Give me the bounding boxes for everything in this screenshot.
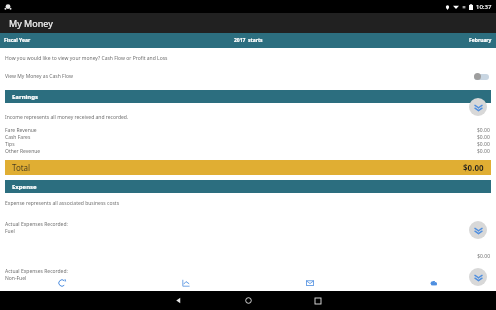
button[interactable]: Total: [5, 160, 491, 175]
staticText: View My Money as Cash Flow: [5, 73, 474, 80]
button[interactable]: View My Money as Cash Flow: [0, 70, 496, 82]
button[interactable]: Refresh: [0, 275, 124, 291]
staticText: Non-Fuel: [5, 275, 27, 282]
button[interactable]: Expand Fuel expenses: [469, 221, 487, 239]
button[interactable]: Email: [248, 275, 372, 291]
staticText: Other Revenue: [5, 148, 477, 155]
staticText: How you would like to view your money? C…: [5, 55, 168, 62]
button[interactable]: Fare Revenue: [0, 127, 496, 134]
button[interactable]: Expense: [5, 180, 491, 193]
staticText: $0.00: [0, 253, 490, 260]
staticText: Earnings: [12, 93, 39, 101]
staticText: Total: [12, 162, 31, 173]
staticText: Actual Expenses Recorded:: [5, 221, 68, 228]
button[interactable]: Home: [213, 291, 283, 310]
staticText: Fare Revenue: [5, 127, 477, 134]
staticText: Expense represents all associated busine…: [5, 200, 120, 207]
button[interactable]: Expand Earnings: [469, 98, 487, 116]
button[interactable]: Chart: [124, 275, 248, 291]
staticText: Tips: [5, 141, 477, 148]
staticText: Fuel: [5, 228, 15, 235]
button[interactable]: Fiscal Year: [0, 33, 496, 48]
staticText: $0.00: [477, 134, 490, 141]
button[interactable]: Back: [143, 291, 213, 310]
button[interactable]: Expand Non-Fuel expenses: [469, 268, 487, 286]
staticText: $0.00: [477, 127, 490, 134]
staticText: Fiscal Year: [4, 37, 31, 44]
button[interactable]: Upload to cloud: [372, 275, 496, 291]
button[interactable]: Tips: [0, 141, 496, 148]
button[interactable]: Other Revenue: [0, 148, 496, 155]
staticText: $0.00: [477, 148, 490, 155]
staticText: $0.00: [463, 162, 484, 173]
staticText: Actual Expenses Recorded:: [5, 268, 68, 275]
staticText: My Money: [9, 17, 53, 29]
staticText: February: [469, 37, 492, 44]
staticText: Expense: [12, 183, 37, 191]
staticText: Income represents all money received and…: [5, 114, 129, 121]
staticText: $0.00: [477, 141, 490, 148]
button[interactable]: Earnings: [5, 90, 491, 103]
button[interactable]: Cash Fares: [0, 134, 496, 141]
staticText: Cash Fares: [5, 134, 477, 141]
staticText: 2017 starts: [234, 37, 263, 44]
staticText: 10:37: [476, 3, 492, 11]
button[interactable]: Recents: [283, 291, 353, 310]
